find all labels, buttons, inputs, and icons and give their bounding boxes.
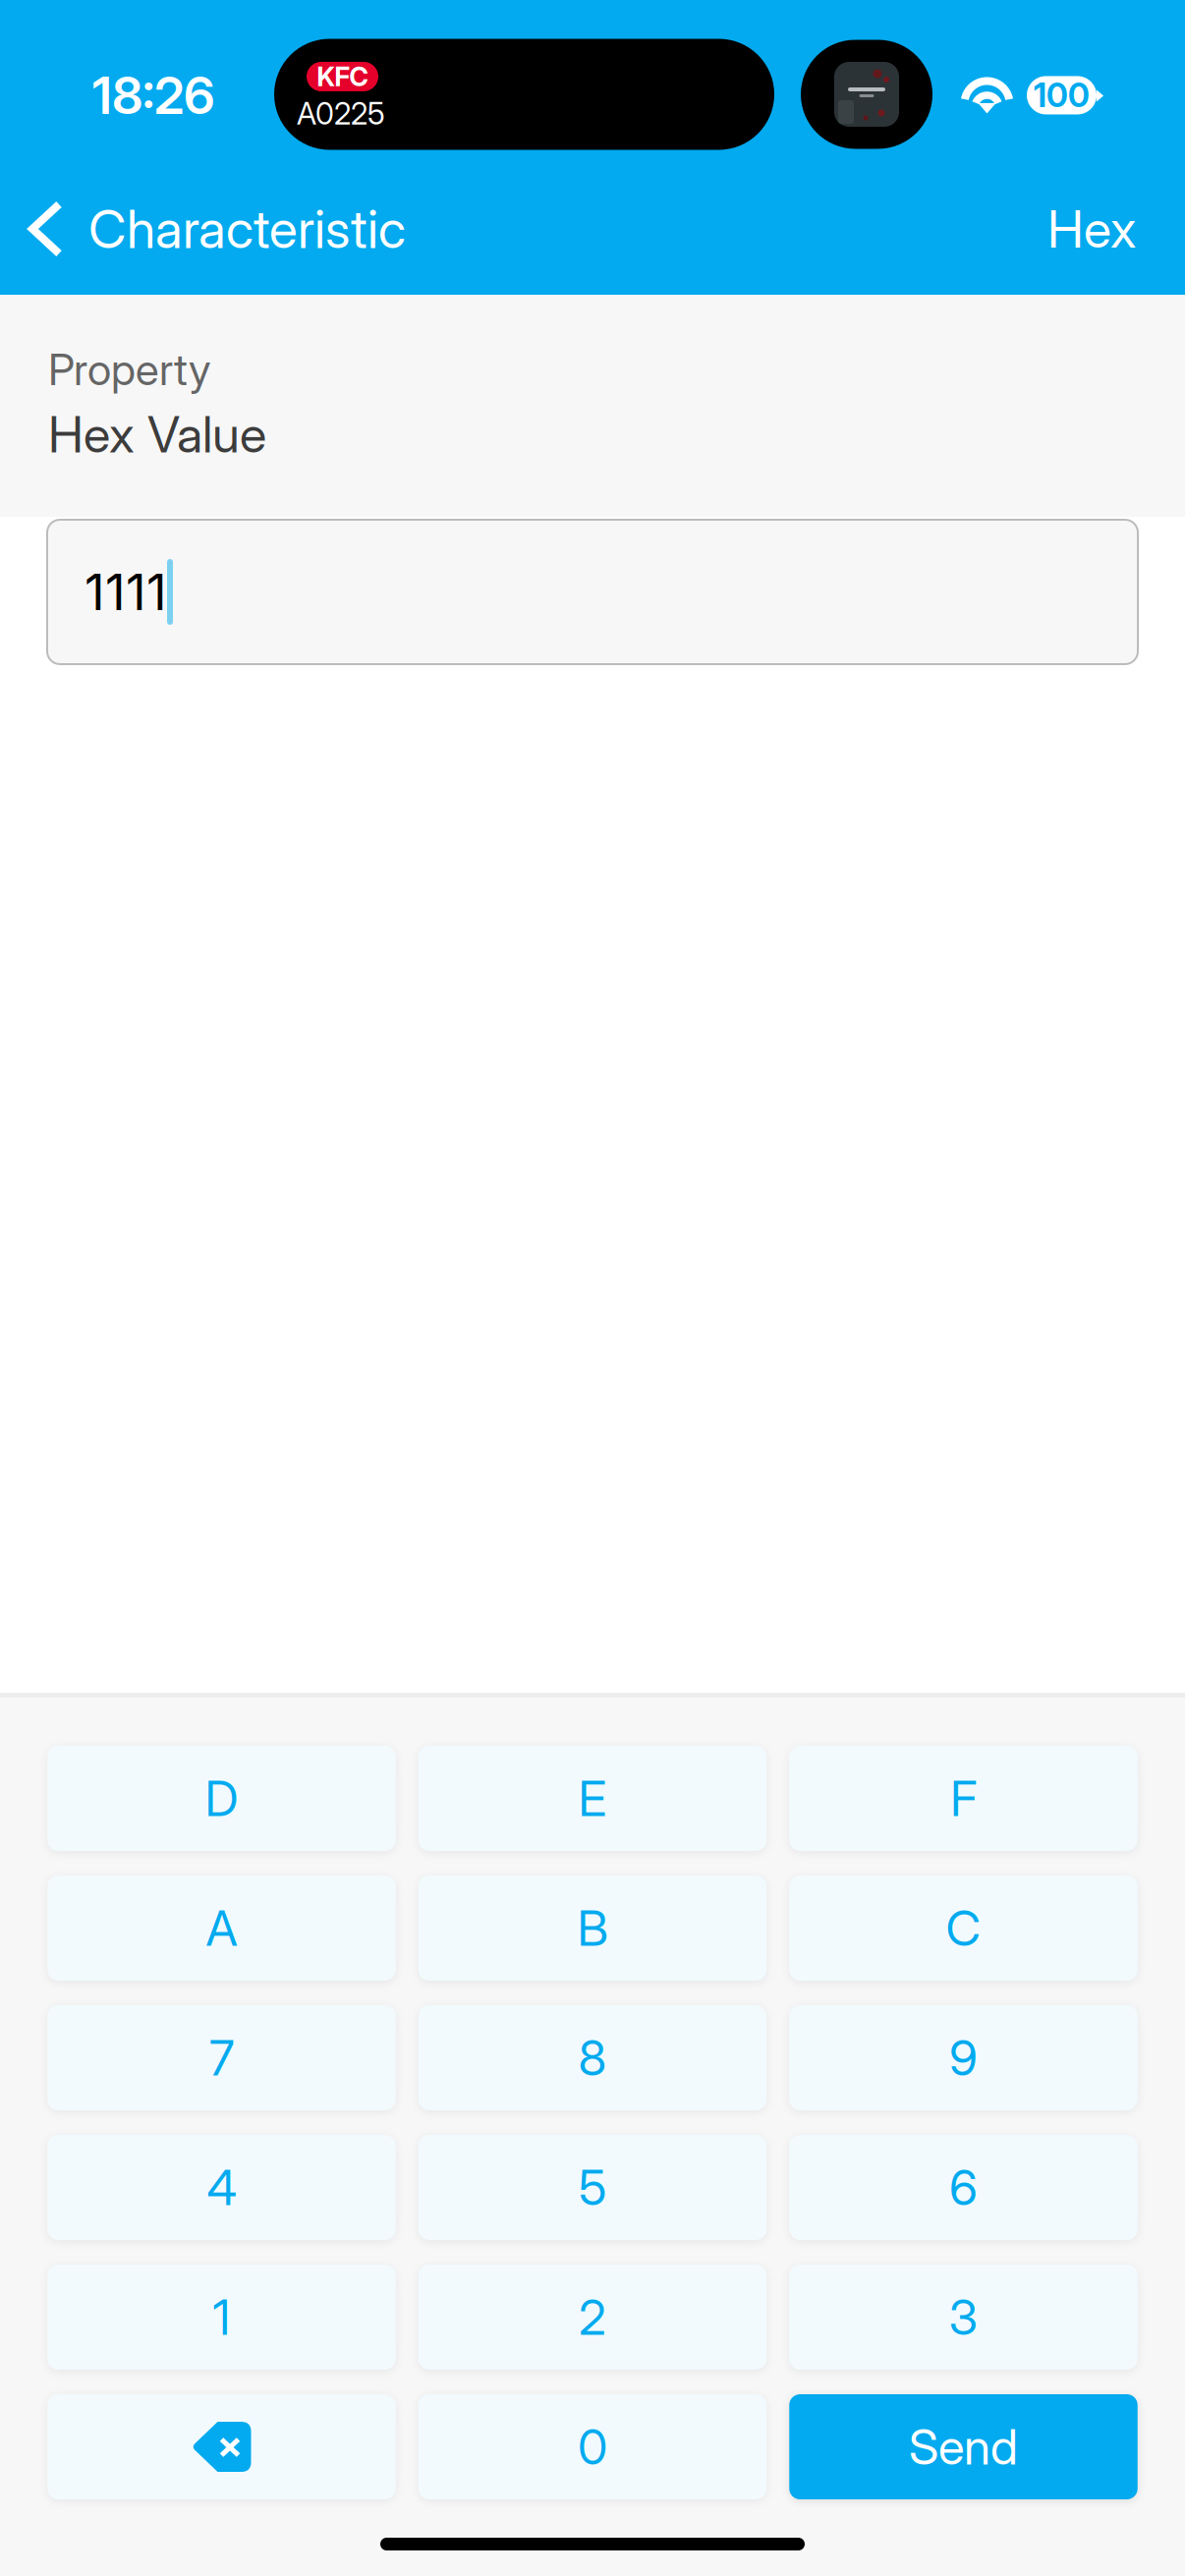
button[interactable]: 6 [789, 2135, 1138, 2240]
staticText: 6 [949, 2158, 978, 2217]
staticText: B [577, 1899, 608, 1957]
button[interactable]: B [418, 1876, 767, 1981]
staticText: A0225 [297, 95, 385, 132]
button[interactable]: 0 [418, 2394, 767, 2499]
staticText: Hex [1047, 198, 1136, 260]
button[interactable]: 1111 [0, 517, 1185, 664]
button[interactable]: Characteristic [0, 181, 406, 276]
button[interactable]: A [47, 1876, 396, 1981]
button[interactable]: 2 [418, 2265, 767, 2370]
button[interactable]: F [789, 1746, 1138, 1851]
staticText: 5 [579, 2158, 606, 2217]
staticText: A [206, 1899, 237, 1957]
staticText: 7 [209, 2028, 234, 2087]
staticText: Send [909, 2418, 1018, 2476]
staticText: 0 [578, 2418, 607, 2476]
staticText: 1 [213, 2288, 230, 2346]
staticText: 2 [579, 2288, 606, 2346]
button[interactable]: 7 [47, 2005, 396, 2110]
button[interactable]: 3 [789, 2265, 1138, 2370]
button[interactable]: Send [789, 2394, 1138, 2499]
staticText: KFC [317, 61, 368, 92]
staticText: E [578, 1769, 607, 1828]
button[interactable]: 8 [418, 2005, 767, 2110]
staticText: 8 [578, 2028, 607, 2087]
button[interactable]: 4 [47, 2135, 396, 2240]
button[interactable]: 5 [418, 2135, 767, 2240]
button[interactable]: Hex [1022, 182, 1185, 275]
staticText: 1111 [85, 562, 167, 622]
staticText: F [950, 1769, 977, 1828]
staticText: 18:26 [92, 64, 215, 126]
button[interactable]: D [47, 1746, 396, 1851]
button[interactable]: 9 [789, 2005, 1138, 2110]
staticText: 100 [1034, 75, 1090, 115]
staticText: Property [48, 343, 211, 396]
staticText: 9 [949, 2028, 978, 2087]
staticText: 4 [207, 2158, 236, 2217]
button[interactable]: C [789, 1876, 1138, 1981]
button[interactable]: Delete [47, 2394, 396, 2499]
staticText: Characteristic [88, 197, 406, 261]
staticText: 3 [949, 2288, 978, 2346]
button[interactable]: E [418, 1746, 767, 1851]
button[interactable]: 1 [47, 2265, 396, 2370]
staticText: C [946, 1899, 981, 1957]
staticText: D [205, 1769, 238, 1828]
staticText: Hex Value [48, 404, 266, 464]
